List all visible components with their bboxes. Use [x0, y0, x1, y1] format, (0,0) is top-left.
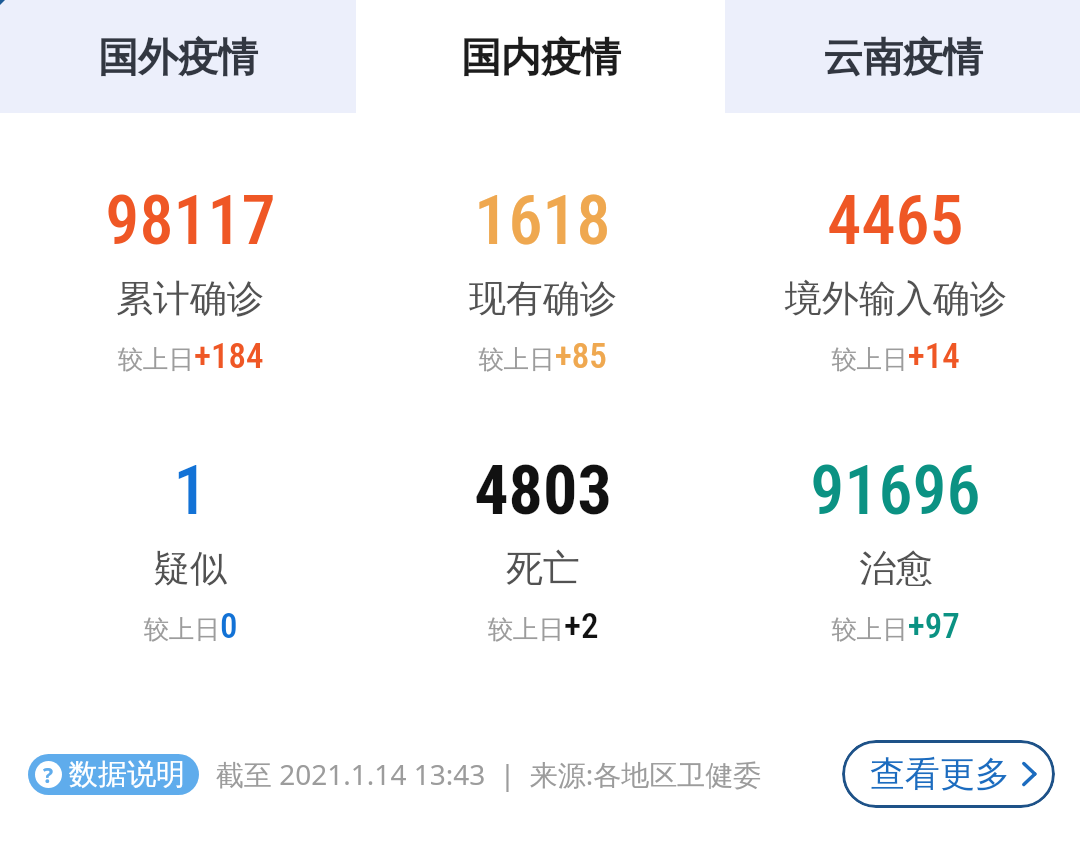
staticText: 较上日+2 — [487, 606, 599, 647]
button[interactable]: 国内疫情 — [356, 0, 725, 113]
staticText: 国内疫情 — [461, 32, 621, 82]
staticText: 治愈 — [859, 545, 933, 592]
staticText: 查看更多 — [870, 752, 1010, 796]
staticText: 1618 — [474, 181, 611, 261]
staticText: 截至 2021.1.14 13:43 | 来源:各地区卫健委 — [216, 755, 762, 793]
staticText: 境外输入确诊 — [785, 275, 1007, 322]
staticText: 4803 — [474, 451, 612, 531]
staticText: 疑似 — [153, 545, 227, 592]
button[interactable]: 1 — [14, 451, 366, 647]
staticText: 较上日0 — [143, 606, 238, 647]
button[interactable]: 98117 — [14, 181, 366, 377]
staticText: 较上日+14 — [831, 336, 960, 377]
staticText: 91696 — [810, 451, 981, 531]
staticText: 现有确诊 — [469, 275, 617, 322]
button[interactable]: 1618 — [366, 181, 719, 377]
staticText: 较上日+85 — [478, 336, 607, 377]
staticText: 较上日+97 — [831, 606, 960, 647]
button[interactable]: ? — [28, 754, 199, 795]
staticText: 1 — [173, 451, 208, 531]
staticText: 云南疫情 — [823, 32, 983, 82]
button[interactable]: 国外疫情 — [0, 0, 356, 113]
button[interactable]: 4803 — [366, 451, 719, 647]
staticText: 较上日+184 — [117, 336, 264, 377]
staticText: ? — [43, 761, 54, 788]
staticText: 累计确诊 — [116, 275, 264, 322]
button[interactable]: 4465 — [719, 181, 1072, 377]
staticText: 国外疫情 — [98, 32, 258, 82]
staticText: 数据说明 — [69, 756, 185, 793]
button[interactable]: 查看更多 — [842, 740, 1055, 808]
staticText: 98117 — [105, 181, 276, 261]
button[interactable]: 云南疫情 — [725, 0, 1080, 113]
staticText: 死亡 — [506, 545, 580, 592]
staticText: 4465 — [827, 181, 964, 261]
button[interactable]: 91696 — [719, 451, 1072, 647]
